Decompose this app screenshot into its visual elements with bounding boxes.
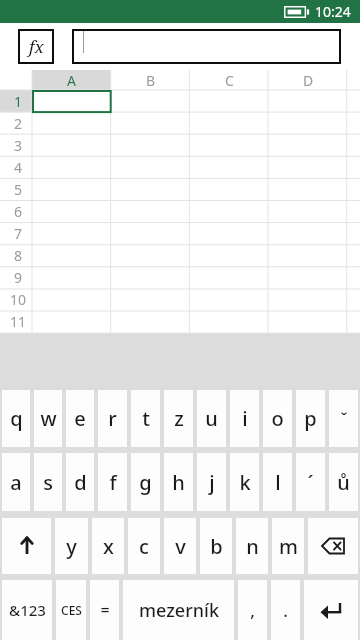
- button[interactable]: Formula input: [72, 29, 341, 64]
- staticText: y: [66, 533, 77, 560]
- staticText: 10: [10, 290, 27, 309]
- staticText: x: [103, 533, 114, 560]
- button[interactable]: =: [90, 580, 119, 640]
- button[interactable]: 2: [0, 112, 32, 134]
- staticText: t: [142, 405, 150, 432]
- staticText: 5: [14, 180, 23, 199]
- staticText: CES: [61, 602, 82, 618]
- button[interactable]: f: [98, 453, 127, 511]
- staticText: o: [271, 405, 284, 432]
- button[interactable]: ů: [329, 453, 358, 511]
- staticText: 6: [14, 202, 23, 221]
- staticText: w: [40, 405, 57, 432]
- button[interactable]: 8: [0, 244, 32, 266]
- staticText: mezerník: [139, 598, 219, 623]
- button[interactable]: e: [66, 390, 94, 447]
- button[interactable]: x: [92, 518, 124, 574]
- button[interactable]: l: [263, 453, 292, 511]
- button[interactable]: 7: [0, 222, 32, 244]
- staticText: =: [100, 599, 110, 621]
- button[interactable]: A: [32, 70, 111, 90]
- staticText: u: [205, 405, 218, 432]
- button[interactable]: y: [55, 518, 88, 574]
- button[interactable]: w: [34, 390, 62, 447]
- button[interactable]: b: [200, 518, 232, 574]
- button[interactable]: Insert function: [18, 29, 54, 64]
- button[interactable]: o: [263, 390, 292, 447]
- button[interactable]: m: [272, 518, 304, 574]
- button[interactable]: D: [269, 70, 348, 90]
- button[interactable]: Shift: [2, 518, 51, 574]
- button[interactable]: v: [164, 518, 196, 574]
- button[interactable]: u: [197, 390, 226, 447]
- button[interactable]: i: [230, 390, 259, 447]
- staticText: 4: [14, 158, 23, 177]
- staticText: i: [242, 405, 248, 432]
- button[interactable]: p: [296, 390, 325, 447]
- staticText: g: [139, 469, 152, 496]
- button[interactable]: Enter: [304, 580, 358, 640]
- button[interactable]: g: [131, 453, 160, 511]
- staticText: h: [172, 469, 185, 496]
- staticText: m: [279, 533, 298, 560]
- button[interactable]: 11: [0, 310, 32, 332]
- staticText: 2: [14, 114, 23, 133]
- staticText: v: [175, 533, 186, 560]
- button[interactable]: 10: [0, 288, 32, 310]
- button[interactable]: n: [236, 518, 268, 574]
- staticText: &123: [9, 600, 46, 620]
- button[interactable]: B: [111, 70, 190, 90]
- staticText: b: [210, 533, 223, 560]
- staticText: A: [67, 71, 76, 90]
- staticText: .: [283, 599, 288, 622]
- button[interactable]: 4: [0, 156, 32, 178]
- button[interactable]: Backspace: [308, 518, 358, 574]
- button[interactable]: 9: [0, 266, 32, 288]
- staticText: 9: [14, 268, 23, 287]
- staticText: 11: [10, 312, 27, 331]
- button[interactable]: s: [34, 453, 62, 511]
- staticText: ˇ: [340, 407, 348, 430]
- button[interactable]: d: [66, 453, 94, 511]
- button[interactable]: .: [271, 580, 300, 640]
- button[interactable]: ˇ: [329, 390, 358, 447]
- staticText: ,: [250, 599, 255, 622]
- staticText: a: [10, 469, 22, 496]
- button[interactable]: a: [2, 453, 30, 511]
- staticText: c: [139, 533, 149, 560]
- staticText: 8: [14, 246, 23, 265]
- button[interactable]: 5: [0, 178, 32, 200]
- staticText: j: [209, 469, 215, 496]
- button[interactable]: t: [131, 390, 160, 447]
- button[interactable]: z: [164, 390, 193, 447]
- button[interactable]: mezerník: [123, 580, 234, 640]
- button[interactable]: &123: [2, 580, 52, 640]
- staticText: r: [108, 405, 117, 432]
- button[interactable]: k: [230, 453, 259, 511]
- button[interactable]: 6: [0, 200, 32, 222]
- staticText: 1: [14, 92, 23, 111]
- button[interactable]: j: [197, 453, 226, 511]
- button[interactable]: 1: [0, 90, 32, 112]
- button[interactable]: h: [164, 453, 193, 511]
- staticText: 3: [14, 136, 23, 155]
- button[interactable]: c: [128, 518, 160, 574]
- staticText: e: [74, 405, 86, 432]
- staticText: 10:24: [315, 2, 351, 21]
- button[interactable]: ,: [238, 580, 267, 640]
- button[interactable]: C: [190, 70, 269, 90]
- staticText: z: [174, 405, 184, 432]
- button[interactable]: CES: [56, 580, 86, 640]
- button[interactable]: 3: [0, 134, 32, 156]
- staticText: f: [109, 469, 117, 496]
- staticText: ů: [337, 469, 350, 496]
- staticText: p: [304, 405, 317, 432]
- staticText: n: [246, 533, 259, 560]
- button[interactable]: r: [98, 390, 127, 447]
- button[interactable]: ´: [296, 453, 325, 511]
- staticText: l: [275, 469, 281, 496]
- staticText: B: [146, 71, 156, 90]
- staticText: 7: [14, 224, 23, 243]
- staticText: s: [43, 469, 53, 496]
- button[interactable]: q: [2, 390, 30, 447]
